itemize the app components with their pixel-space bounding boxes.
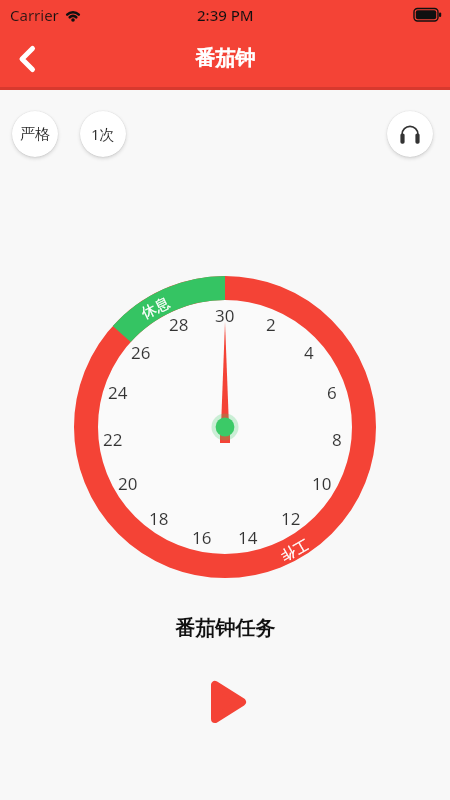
button[interactable] <box>10 41 46 77</box>
staticText: 18 <box>149 507 169 529</box>
staticText: 严格 <box>20 125 50 144</box>
staticText: 2 <box>266 313 276 335</box>
staticText: 番茄钟 <box>195 46 255 71</box>
staticText: 6 <box>327 381 337 403</box>
staticText: Carrier <box>10 5 59 25</box>
button[interactable] <box>387 111 433 157</box>
staticText: 24 <box>108 381 128 403</box>
staticText: 20 <box>118 472 138 494</box>
button[interactable]: 严格 <box>12 111 58 157</box>
staticText: 28 <box>169 313 189 335</box>
staticText: 工作 <box>277 535 312 565</box>
button[interactable]: 1次 <box>80 111 126 157</box>
staticText: 16 <box>192 526 212 548</box>
staticText: 1次 <box>91 124 115 144</box>
staticText: 22 <box>103 428 123 450</box>
button[interactable] <box>197 672 253 730</box>
staticText: 4 <box>304 341 314 363</box>
staticText: 14 <box>238 526 258 548</box>
staticText: 8 <box>332 428 342 450</box>
staticText: 2:39 PM <box>197 5 254 25</box>
staticText: 26 <box>131 341 151 363</box>
staticText: 番茄钟任务 <box>175 616 275 641</box>
staticText: 休息 <box>138 293 172 322</box>
staticText: 12 <box>281 507 301 529</box>
staticText: 30 <box>215 304 235 326</box>
staticText: 10 <box>312 472 332 494</box>
